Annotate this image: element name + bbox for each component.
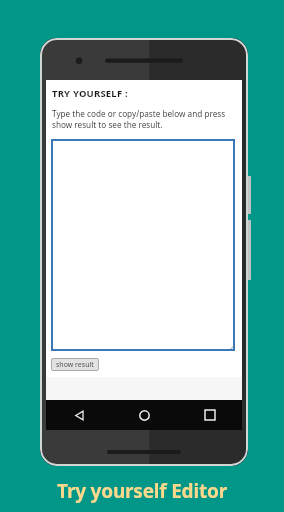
button[interactable] xyxy=(51,139,235,351)
button[interactable]: show result xyxy=(51,358,99,371)
staticText: show result xyxy=(56,360,94,370)
staticText: Try yourself Editor xyxy=(0,478,284,504)
button[interactable]: Back xyxy=(46,400,112,430)
button[interactable]: Recent apps xyxy=(177,400,242,430)
staticText: TRY YOURSELF : xyxy=(52,87,128,100)
staticText: Type the code or copy/paste below and pr… xyxy=(52,108,226,130)
button[interactable]: Home xyxy=(112,400,177,430)
